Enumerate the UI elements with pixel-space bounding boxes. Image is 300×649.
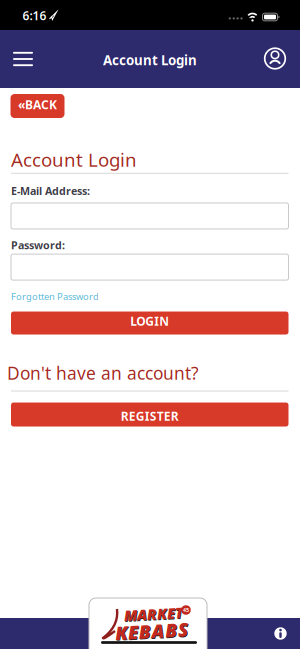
button[interactable]: REGISTER: [11, 402, 288, 426]
staticText: MARKET: [124, 604, 183, 624]
staticText: 6:16: [22, 7, 46, 23]
button[interactable]: «BACK: [10, 94, 64, 118]
staticText: Don't have an account?: [7, 361, 199, 384]
button[interactable]: Menu: [6, 42, 40, 76]
staticText: Password:: [11, 238, 65, 252]
staticText: E-Mail Address:: [11, 184, 90, 198]
staticText: 45: [183, 606, 189, 613]
button[interactable]: Info: [272, 625, 288, 641]
staticText: KEBABS: [116, 619, 189, 644]
staticText: KEBABS: [115, 619, 188, 643]
button[interactable]: Forgotten Password: [11, 290, 99, 302]
staticText: Forgotten Password: [11, 290, 99, 302]
staticText: LOGIN: [130, 313, 169, 329]
staticText: Account Login: [11, 147, 137, 172]
button[interactable]: LOGIN: [11, 311, 288, 334]
staticText: «BACK: [18, 96, 57, 112]
staticText: MARKET: [125, 605, 184, 624]
staticText: REGISTER: [121, 408, 179, 424]
button[interactable]: Account: [258, 41, 292, 75]
staticText: Account Login: [103, 51, 197, 69]
